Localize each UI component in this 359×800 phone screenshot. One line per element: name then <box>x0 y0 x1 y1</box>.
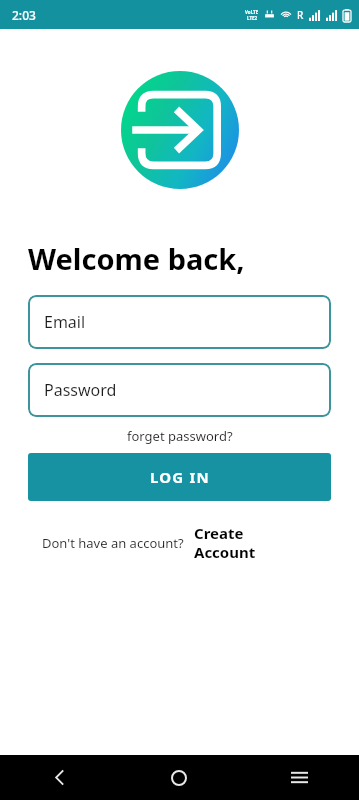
staticText: Create Account <box>194 523 274 562</box>
staticText: VoLTE <box>245 9 259 15</box>
staticText: Email <box>44 311 86 333</box>
button[interactable]: Create Account <box>194 523 274 562</box>
staticText: LTE2 <box>247 15 258 21</box>
staticText: forget password? <box>127 427 233 445</box>
staticText: Welcome back, <box>28 239 245 278</box>
button[interactable]: Recent apps <box>239 755 359 800</box>
staticText: R <box>297 8 304 22</box>
staticText: Don't have an account? <box>42 534 184 552</box>
button[interactable]: forget password? <box>123 425 237 447</box>
button[interactable]: Email <box>28 295 331 349</box>
button[interactable]: Home <box>119 755 239 800</box>
button[interactable]: Password <box>28 363 331 417</box>
staticText: Password <box>44 379 117 401</box>
staticText: LOG IN <box>150 467 210 487</box>
staticText: 2:03 <box>12 7 36 23</box>
button[interactable]: LOG IN <box>28 453 331 501</box>
button[interactable]: Back <box>0 755 119 800</box>
